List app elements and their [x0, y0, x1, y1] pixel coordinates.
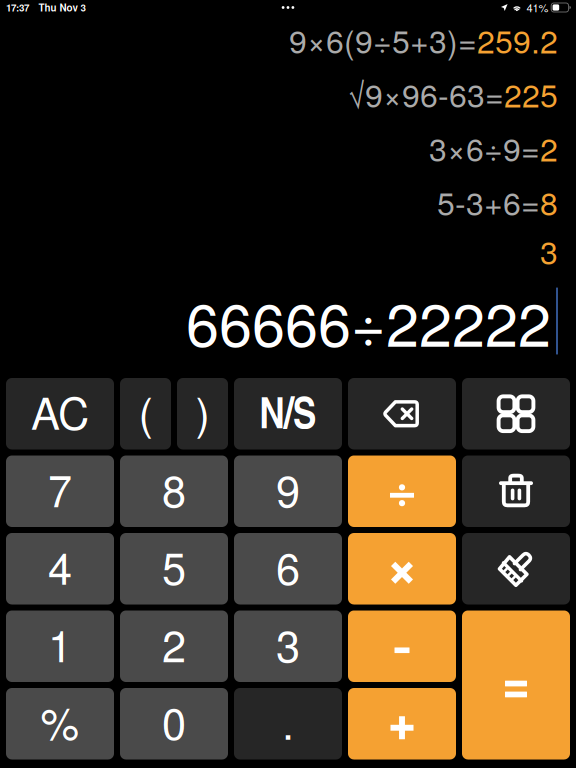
staticText: 5-3+6= — [437, 179, 540, 225]
staticText: 259.2 — [477, 17, 558, 63]
staticText: 0 — [162, 690, 186, 752]
staticText: 225 — [504, 71, 558, 117]
staticText: 41% — [527, 0, 549, 15]
button[interactable]: More — [462, 378, 570, 449]
staticText: 3 — [540, 228, 558, 274]
button[interactable]: 6 — [234, 533, 342, 604]
staticText: 9×6(9÷5+3)= — [289, 17, 477, 63]
staticText: 9 — [276, 457, 300, 520]
staticText: % — [40, 690, 79, 752]
button[interactable]: 7 — [6, 455, 114, 527]
staticText: ) — [195, 380, 209, 442]
staticText: 4 — [48, 535, 72, 597]
staticText: √9×96-63= — [348, 71, 504, 117]
button[interactable]: Clear history — [462, 455, 570, 527]
button[interactable] — [348, 688, 456, 759]
staticText: 8 — [540, 179, 558, 225]
button[interactable]: ( — [120, 378, 171, 449]
button[interactable] — [462, 610, 570, 759]
button[interactable]: 1 — [6, 610, 114, 682]
staticText: . — [282, 690, 294, 752]
button[interactable] — [348, 533, 456, 604]
button[interactable]: 4 — [6, 533, 114, 604]
staticText: 3×6÷9= — [429, 125, 540, 171]
staticText: 17:37 — [6, 0, 29, 14]
button[interactable]: 9 — [234, 455, 342, 527]
staticText: 5 — [162, 535, 186, 597]
staticText: N/S — [259, 380, 317, 442]
staticText: 2 — [162, 612, 186, 675]
button[interactable]: 5 — [120, 533, 228, 604]
button[interactable] — [348, 610, 456, 682]
staticText: ( — [138, 380, 152, 442]
button[interactable]: % — [6, 688, 114, 759]
staticText: 2 — [540, 125, 558, 171]
staticText: 3 — [276, 612, 300, 675]
button[interactable]: Theme — [462, 533, 570, 604]
button[interactable]: AC — [6, 378, 114, 449]
button[interactable]: 0 — [120, 688, 228, 759]
staticText: 7 — [48, 457, 72, 520]
staticText: Thu Nov 3 — [38, 0, 85, 14]
button[interactable]: Backspace — [348, 378, 456, 449]
button[interactable]: 2 — [120, 610, 228, 682]
button[interactable]: 3 — [234, 610, 342, 682]
staticText: 1 — [48, 612, 72, 675]
staticText: 8 — [162, 457, 186, 520]
button[interactable]: N/S — [234, 378, 342, 449]
button[interactable]: 8 — [120, 455, 228, 527]
staticText: 6 — [276, 535, 300, 597]
staticText: AC — [31, 380, 89, 442]
staticText: 66666÷22222 — [186, 278, 551, 363]
button[interactable] — [348, 455, 456, 527]
button[interactable]: ) — [177, 378, 228, 449]
button[interactable]: . — [234, 688, 342, 759]
